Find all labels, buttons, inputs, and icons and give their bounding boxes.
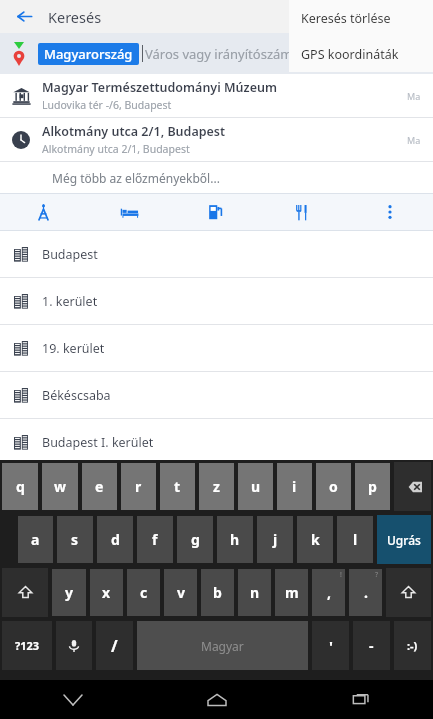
staticText: o <box>329 477 338 496</box>
button[interactable]: Keresés törlése <box>289 0 433 36</box>
button[interactable]: - <box>353 621 390 670</box>
button[interactable]: q <box>2 463 38 510</box>
staticText: n <box>250 583 260 602</box>
button[interactable]: :-) <box>394 621 431 670</box>
staticText: d <box>111 530 120 549</box>
staticText: ?123 <box>15 638 40 653</box>
staticText: ' <box>329 636 333 656</box>
button[interactable]: l <box>337 516 373 563</box>
staticText: Ludovika tér -/6, Budapest <box>42 98 172 112</box>
button[interactable]: k <box>297 516 333 563</box>
button[interactable]: Backspace <box>394 462 431 511</box>
staticText: ? <box>375 570 379 580</box>
button[interactable]: d <box>97 516 133 563</box>
staticText: ! <box>340 570 342 580</box>
staticText: . <box>364 583 368 602</box>
button[interactable]: p <box>355 463 390 510</box>
button[interactable]: 1. kerület <box>0 278 433 324</box>
button[interactable]: j <box>257 516 293 563</box>
button[interactable]: Még több az előzményekből... <box>0 162 433 193</box>
staticText: Még több az előzményekből... <box>52 170 220 186</box>
button[interactable]: m <box>275 569 308 616</box>
button[interactable]: Budapest <box>0 231 433 277</box>
button[interactable]: . <box>349 569 382 616</box>
button[interactable]: / <box>96 621 133 670</box>
staticText: Ugrás <box>387 532 421 548</box>
staticText: Magyar Természettudományi Múzeum <box>42 79 277 96</box>
button[interactable]: Alkotmány utca 2/1, Budapest <box>0 118 433 161</box>
button[interactable]: Ugrás <box>377 515 431 564</box>
staticText: p <box>368 477 377 496</box>
button[interactable]: , <box>312 569 345 616</box>
button[interactable]: u <box>238 463 273 510</box>
button[interactable]: Shift <box>386 568 431 617</box>
staticText: g <box>191 530 200 549</box>
button[interactable]: Hotels <box>86 194 172 230</box>
staticText: x <box>102 583 111 602</box>
staticText: l <box>353 530 358 549</box>
staticText: , <box>327 583 331 602</box>
button[interactable]: w <box>42 463 78 510</box>
button[interactable]: h <box>217 516 253 563</box>
button[interactable]: f <box>137 516 173 563</box>
button[interactable]: e <box>82 463 117 510</box>
button[interactable]: Magyar <box>137 621 308 670</box>
button[interactable]: ?123 <box>2 621 52 670</box>
staticText: k <box>311 530 320 549</box>
button[interactable]: Restaurants <box>259 194 346 230</box>
staticText: u <box>251 477 261 496</box>
button[interactable]: Attractions <box>0 194 86 230</box>
button[interactable]: Magyarország <box>44 45 133 63</box>
staticText: Magyar <box>201 638 244 654</box>
button[interactable]: ' <box>312 621 349 670</box>
staticText: w <box>54 477 66 496</box>
button[interactable]: More <box>346 194 433 230</box>
staticText: GPS koordináták <box>301 46 399 63</box>
button[interactable]: Hide keyboard <box>0 680 145 719</box>
button[interactable]: v <box>164 569 197 616</box>
button[interactable]: n <box>238 569 271 616</box>
staticText: r <box>135 477 142 496</box>
staticText: Budapest I. kerület <box>42 434 154 451</box>
button[interactable]: c <box>127 569 160 616</box>
staticText: f <box>152 530 158 549</box>
staticText: Budapest <box>42 246 98 263</box>
button[interactable]: z <box>199 463 234 510</box>
button[interactable]: GPS koordináták <box>289 36 433 72</box>
staticText: Város vagy irányítószám <box>145 45 293 63</box>
staticText: Alkotmány utca 2/1, Budapest <box>42 123 226 140</box>
button[interactable]: t <box>160 463 195 510</box>
button[interactable]: x <box>90 569 123 616</box>
button[interactable]: Back <box>0 0 48 33</box>
staticText: t <box>174 477 181 496</box>
button[interactable]: Home <box>145 680 289 719</box>
button[interactable]: Fuel <box>172 194 259 230</box>
button[interactable]: g <box>177 516 213 563</box>
staticText: Keresés <box>48 7 102 27</box>
button[interactable]: r <box>121 463 156 510</box>
staticText: j <box>273 530 278 549</box>
staticText: e <box>95 477 104 496</box>
button[interactable]: Magyar Természettudományi Múzeum <box>0 74 433 117</box>
button[interactable]: Shift <box>2 568 48 617</box>
button[interactable]: Voice input <box>56 621 92 670</box>
staticText: c <box>140 583 148 602</box>
button[interactable]: s <box>57 516 93 563</box>
staticText: q <box>16 477 25 496</box>
button[interactable]: Recent apps <box>289 680 433 719</box>
staticText: / <box>111 635 118 657</box>
button[interactable]: i <box>277 463 312 510</box>
button[interactable]: o <box>316 463 351 510</box>
staticText: v <box>177 583 185 602</box>
staticText: 19. kerület <box>42 340 105 357</box>
button[interactable]: Budapest I. kerület <box>0 419 433 465</box>
button[interactable]: a <box>18 516 53 563</box>
staticText: Ma <box>407 134 421 146</box>
staticText: m <box>285 583 299 602</box>
button[interactable]: b <box>201 569 234 616</box>
button[interactable]: Békéscsaba <box>0 372 433 418</box>
staticText: 1. kerület <box>42 293 98 310</box>
button[interactable]: 19. kerület <box>0 325 433 371</box>
staticText: y <box>65 583 73 602</box>
button[interactable]: y <box>52 569 86 616</box>
